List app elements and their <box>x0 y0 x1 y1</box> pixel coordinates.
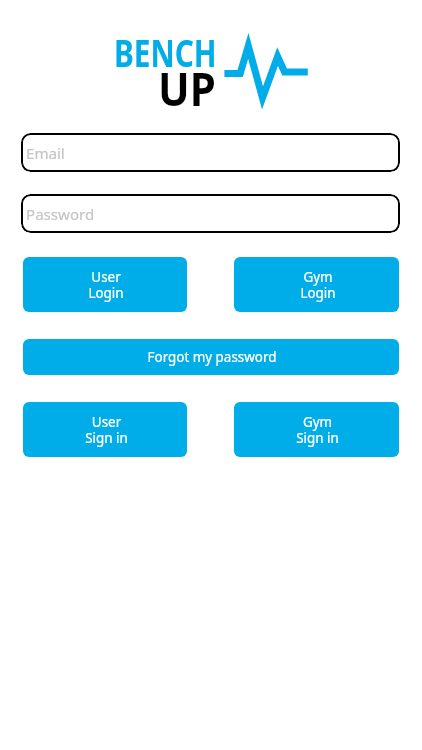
staticText: User Login <box>88 266 123 302</box>
staticText: Password <box>26 204 95 225</box>
button[interactable]: Forgot my password <box>23 339 399 375</box>
staticText: User Sign in <box>85 411 128 447</box>
button[interactable]: User Sign in <box>23 402 187 457</box>
staticText: Gym Login <box>300 266 336 302</box>
staticText: Forgot my password <box>147 346 277 366</box>
staticText: Gym Sign in <box>296 411 339 447</box>
button[interactable]: User Login <box>23 257 187 312</box>
button[interactable]: Password <box>21 194 400 233</box>
button[interactable]: Email <box>21 133 400 172</box>
button[interactable]: Gym Sign in <box>234 402 399 457</box>
staticText: UP <box>158 57 216 120</box>
staticText: BENCH <box>114 27 217 78</box>
staticText: Email <box>26 143 65 164</box>
button[interactable]: Gym Login <box>234 257 399 312</box>
other: BenchUp heartbeat logo <box>218 20 314 120</box>
